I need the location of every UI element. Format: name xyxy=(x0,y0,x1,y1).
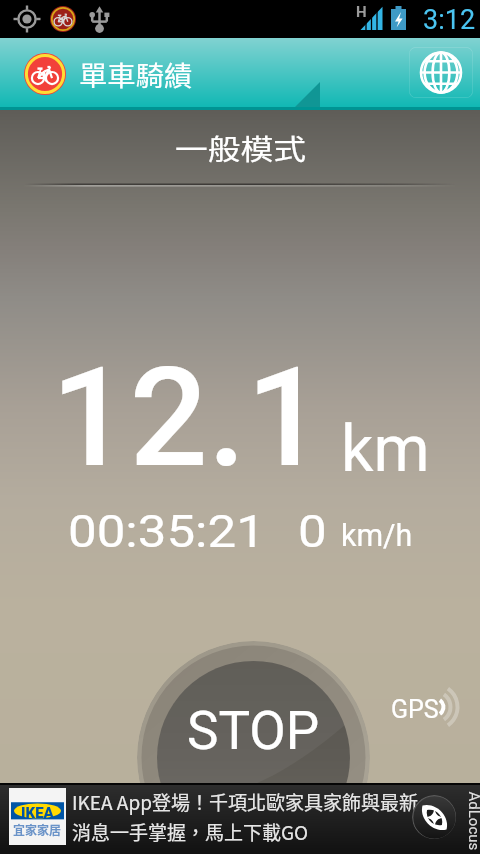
button[interactable]: AdLocus xyxy=(412,795,456,839)
staticText: AdLocus xyxy=(464,791,480,850)
staticText: 0 xyxy=(298,506,327,558)
staticText: 3:12 xyxy=(423,4,476,36)
staticText: STOP xyxy=(187,700,320,762)
button[interactable]: IKEA xyxy=(0,783,480,854)
button[interactable]: STOP xyxy=(137,641,370,854)
staticText: km/h xyxy=(341,517,412,553)
staticText: 00:35:21 xyxy=(68,506,265,558)
staticText: 單車騎績 xyxy=(79,55,192,94)
staticText: km xyxy=(341,412,430,487)
staticText: 12.1 xyxy=(51,337,325,499)
staticText: H xyxy=(356,3,367,21)
staticText: IKEA App登場！千項北歐家具家飾與最新 xyxy=(72,788,418,816)
staticText: IKEA xyxy=(21,804,54,822)
staticText: 宜家家居 xyxy=(13,821,62,838)
button[interactable]: Language xyxy=(409,47,473,98)
staticText: 一般模式 xyxy=(174,128,307,169)
staticText: GPS xyxy=(391,695,439,724)
staticText: 消息一手掌握，馬上下載GO xyxy=(72,818,309,846)
